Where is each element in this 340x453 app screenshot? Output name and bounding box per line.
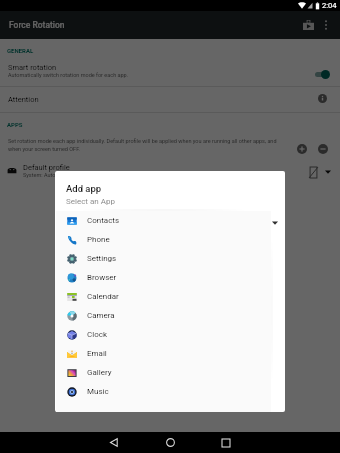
button[interactable]: Phone	[56, 230, 271, 249]
staticText: APPS	[7, 121, 23, 128]
button[interactable]: Home	[161, 433, 180, 452]
button[interactable]: Music	[56, 382, 271, 401]
staticText: Settings	[87, 254, 117, 263]
staticText: Add app	[66, 183, 102, 194]
button[interactable]: Remove app	[313, 139, 332, 158]
staticText: Clock	[87, 330, 107, 339]
button[interactable]: Settings	[56, 249, 271, 268]
staticText: Default profile	[23, 163, 70, 172]
button[interactable]: Email	[56, 344, 271, 363]
staticText: Email	[87, 349, 107, 358]
staticText: Set rotation mode each app individually.…	[8, 138, 280, 153]
staticText: Camera	[87, 311, 115, 320]
button[interactable]: Open dropdown	[269, 217, 281, 229]
button[interactable]: Add app	[292, 139, 311, 158]
button[interactable]: Back	[104, 433, 123, 452]
button[interactable]: Camera	[56, 306, 271, 325]
staticText: GENERAL	[7, 47, 34, 54]
button[interactable]: Attention	[0, 87, 340, 112]
button[interactable]: Store	[296, 13, 320, 37]
staticText: 2:04	[322, 1, 337, 10]
button[interactable]: Contacts	[56, 211, 271, 230]
staticText: Calendar	[87, 292, 119, 301]
button[interactable]: More options	[314, 13, 338, 37]
staticText: Music	[87, 387, 109, 396]
button[interactable]: Recent apps	[216, 433, 235, 452]
staticText: Force Rotation	[9, 20, 65, 30]
button[interactable]: Clock	[56, 325, 271, 344]
button[interactable]: Gallery	[56, 363, 271, 382]
staticText: Smart rotation	[8, 63, 57, 72]
staticText: Gallery	[87, 368, 112, 377]
button[interactable]: Default profile	[0, 159, 340, 185]
staticText: Phone	[87, 235, 110, 244]
staticText: System: Auto-rotate	[23, 172, 72, 178]
staticText: Select an App	[66, 197, 115, 206]
button[interactable]: Smart rotation	[0, 58, 340, 86]
staticText: Attention	[8, 95, 39, 104]
button[interactable]: Calendar	[56, 287, 271, 306]
staticText: Automatically switch rotation mode for e…	[8, 72, 129, 78]
staticText: Contacts	[87, 216, 120, 225]
staticText: Browser	[87, 273, 117, 282]
button[interactable]: Browser	[56, 268, 271, 287]
